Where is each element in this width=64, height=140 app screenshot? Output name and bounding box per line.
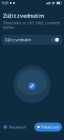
staticText: 9:41 [1,0,8,6]
staticText: Zúžit zvednutím [5,37,32,42]
staticText: Nastavení [9,125,26,129]
staticText: Zúžit zvednutím [3,12,44,19]
staticText: Obrazovka se zúží, když zvednete telefon… [3,21,60,30]
button[interactable]: Pokračovat [34,123,62,131]
button[interactable]: Nastavení [3,123,26,131]
staticText: Pokračovat [41,125,59,129]
button[interactable]: Zúžit zvednutím [2,35,62,45]
